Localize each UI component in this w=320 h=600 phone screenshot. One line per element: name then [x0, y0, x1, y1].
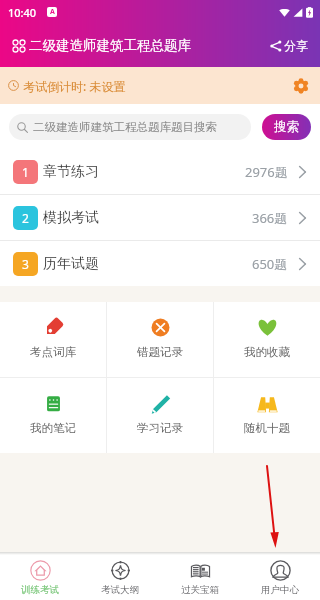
- staticText: 随机十题: [244, 421, 290, 435]
- button[interactable]: 考点词库: [0, 302, 106, 377]
- staticText: 学习记录: [137, 421, 183, 435]
- staticText: 650题: [252, 255, 288, 273]
- staticText: 我的收藏: [244, 345, 290, 359]
- staticText: 训练考试: [21, 584, 59, 596]
- button[interactable]: 过关宝箱: [160, 555, 240, 600]
- staticText: 10:40: [8, 5, 37, 20]
- staticText: 历年试题: [43, 255, 99, 273]
- staticText: 2: [22, 210, 29, 226]
- button[interactable]: 二级建造师建筑工程总题库题目搜索: [9, 114, 251, 140]
- staticText: 考点词库: [30, 345, 76, 359]
- staticText: 模拟考试: [43, 209, 99, 227]
- staticText: 错题记录: [137, 345, 183, 359]
- button[interactable]: 用户中心: [240, 555, 320, 600]
- staticText: 二级建造师建筑工程总题库题目搜索: [33, 120, 217, 134]
- staticText: 2976题: [245, 163, 288, 181]
- staticText: A: [50, 7, 55, 17]
- button[interactable]: 考试倒计时: 未设置: [0, 67, 320, 104]
- staticText: 分享: [284, 38, 308, 53]
- button[interactable]: 搜索: [262, 114, 311, 140]
- button[interactable]: 训练考试: [0, 555, 80, 600]
- button[interactable]: 2: [0, 195, 320, 240]
- button[interactable]: 分享: [266, 34, 312, 57]
- button[interactable]: 考试大纲: [80, 555, 160, 600]
- staticText: 考试大纲: [101, 584, 139, 596]
- staticText: 章节练习: [43, 163, 99, 181]
- staticText: 我的笔记: [30, 421, 76, 435]
- button[interactable]: 随机十题: [214, 378, 320, 453]
- button[interactable]: 设置: [291, 76, 311, 96]
- button[interactable]: 学习记录: [107, 378, 213, 453]
- staticText: 二级建造师建筑工程总题库: [29, 37, 191, 54]
- button[interactable]: 3: [0, 241, 320, 286]
- staticText: 过关宝箱: [181, 584, 219, 596]
- button[interactable]: 我的收藏: [214, 302, 320, 377]
- staticText: 366题: [252, 209, 288, 227]
- staticText: 考试倒计时: 未设置: [23, 78, 126, 94]
- staticText: 搜索: [274, 119, 299, 135]
- staticText: 1: [22, 164, 29, 180]
- button[interactable]: 错题记录: [107, 302, 213, 377]
- button[interactable]: 1: [0, 149, 320, 194]
- button[interactable]: 我的笔记: [0, 378, 106, 453]
- staticText: 3: [22, 256, 29, 272]
- staticText: 用户中心: [261, 584, 299, 596]
